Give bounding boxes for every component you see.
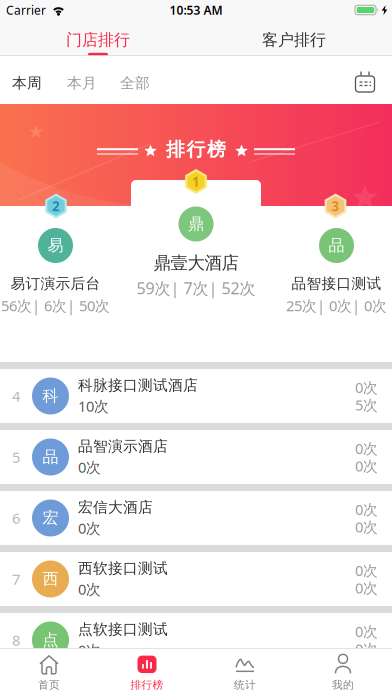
staticText: 7 [12,569,20,589]
staticText: 2 [52,197,60,215]
staticText: 0次 [355,456,378,475]
staticText: 5 [12,447,20,467]
staticText: 8 [12,630,20,650]
staticText: 0次 [355,639,378,658]
staticText: 首页 [38,678,60,691]
staticText: 科脉接口测试酒店 [78,376,198,394]
staticText: 0次 [355,578,378,597]
staticText: 全部 [120,74,150,92]
staticText: 0次 [355,560,378,580]
staticText: 25次| 0次| 0次 [286,296,387,315]
staticText: 56次| 6次| 50次 [1,296,110,315]
staticText: 本周 [12,74,42,92]
staticText: 易 [47,236,63,255]
staticText: 0次 [78,518,101,538]
staticText: 西 [42,569,58,589]
button[interactable]: 5 [0,430,392,484]
staticText: 科 [42,386,58,406]
button[interactable]: 6 [0,491,392,545]
staticText: 品 [42,447,58,467]
staticText: 6 [12,508,20,528]
button[interactable]: 统计 [196,649,294,696]
staticText: 点软接口测试 [78,620,168,638]
button[interactable]: 4 [0,369,392,423]
button[interactable]: 7 [0,552,392,606]
button[interactable]: 首页 [0,649,98,696]
staticText: 宏 [42,508,58,528]
staticText: 1 [192,173,200,190]
staticText: 3 [331,197,339,215]
staticText: 品 [328,236,344,255]
staticText: 排行榜 [130,678,163,691]
button[interactable]: 客户排行 [196,20,392,56]
staticText: 0次 [355,499,378,519]
staticText: 鼎壹大酒店 [153,252,238,274]
staticText: 0次 [355,438,378,458]
staticText: 5次 [355,395,378,414]
staticText: 0次 [78,457,101,477]
staticText: 我的 [332,678,354,691]
staticText: 10:53 AM [169,2,222,18]
staticText: 客户排行 [262,30,326,50]
staticText: 品智演示酒店 [78,437,168,455]
staticText: 点 [42,630,58,650]
staticText: 0次 [355,621,378,641]
staticText: 59次| 7次| 52次 [136,277,255,299]
button[interactable]: 本周 [0,71,42,89]
staticText: 易订演示后台 [10,274,100,292]
button[interactable]: 本月 [42,71,97,89]
staticText: 门店排行 [66,30,130,50]
staticText: 鼎 [188,214,204,234]
button[interactable]: 选择日期 [353,68,392,92]
button[interactable]: 门店排行 [0,20,196,56]
button[interactable]: 排行榜 [98,649,196,696]
staticText: 宏信大酒店 [78,498,153,516]
staticText: 西软接口测试 [78,559,168,577]
staticText: 统计 [234,678,256,691]
staticText: 0次 [78,640,101,660]
staticText: 4 [12,386,20,406]
staticText: 0次 [355,517,378,536]
staticText: 排行榜 [166,138,226,161]
staticText: 0次 [78,579,101,599]
button[interactable]: 我的 [294,649,392,696]
staticText: Carrier [6,2,46,18]
staticText: 0次 [355,377,378,397]
staticText: 本月 [67,74,97,92]
button[interactable]: 全部 [97,71,150,89]
staticText: 品智接口测试 [291,274,381,292]
staticText: 10次 [78,396,109,416]
button[interactable]: 8 [0,613,392,667]
